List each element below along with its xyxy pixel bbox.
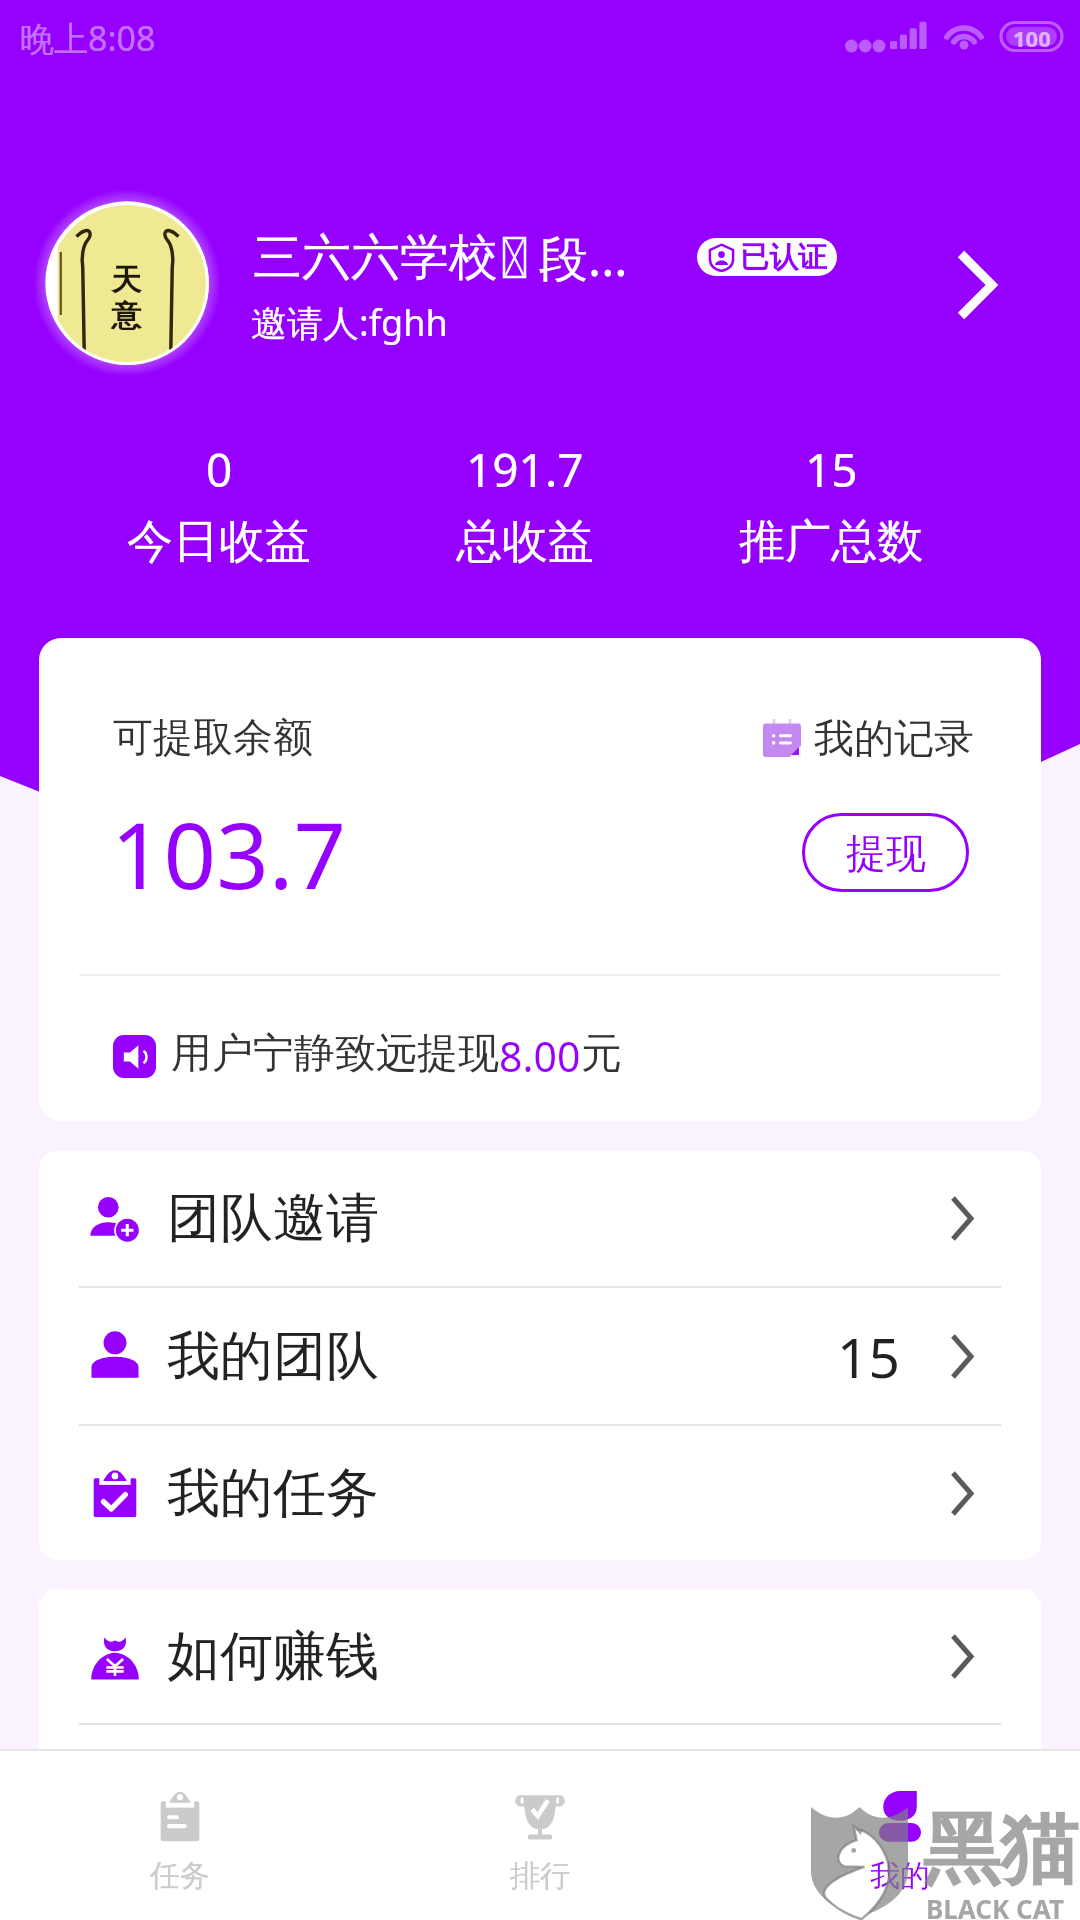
staticText: 100 <box>1013 23 1051 49</box>
staticText: 103.7 <box>111 791 347 916</box>
staticText: 191.7 <box>466 438 584 501</box>
staticText: 邀请人:fghh <box>251 298 448 347</box>
staticText: BLACK CAT <box>926 1891 1064 1920</box>
button[interactable]: 我的记录 <box>763 713 974 763</box>
button[interactable]: 我的团队 <box>39 1288 1041 1424</box>
staticText: 15 <box>837 1319 900 1394</box>
staticText: 总收益 <box>456 513 594 571</box>
button[interactable]: 我的 <box>720 1776 1080 1895</box>
staticText: 提现 <box>846 828 926 878</box>
button[interactable]: 团队邀请 <box>39 1151 1041 1286</box>
staticText: 黑猫 <box>922 1801 1078 1899</box>
staticText: 8.00 <box>499 1028 581 1084</box>
button[interactable]: Open profile <box>932 240 1022 330</box>
button[interactable]: 用户宁静致远提现 <box>113 1028 622 1084</box>
staticText: 团队邀请 <box>167 1185 379 1252</box>
staticText: 已认证 <box>740 239 827 276</box>
staticText: 用户宁静致远提现 <box>171 1028 499 1080</box>
staticText: 今日收益 <box>127 513 311 571</box>
staticText: 三六六学校 <box>253 227 498 289</box>
staticText: 段... <box>539 224 628 291</box>
staticText: 如何赚钱 <box>167 1623 379 1690</box>
staticText: 我的任务 <box>167 1460 379 1527</box>
staticText: 我的团队 <box>167 1323 379 1390</box>
staticText: 可提取余额 <box>113 712 313 762</box>
staticText: 0 <box>206 438 233 501</box>
staticText: 任务 <box>150 1857 210 1895</box>
button[interactable]: 任务 <box>0 1776 360 1895</box>
button[interactable]: 提现 <box>802 813 969 892</box>
button[interactable]: 排行 <box>360 1776 720 1895</box>
button[interactable]: 如何赚钱 <box>39 1589 1041 1723</box>
button[interactable]: Avatar <box>34 190 220 376</box>
staticText: 天 意 <box>111 261 141 335</box>
staticText: 推广总数 <box>739 513 923 571</box>
staticText: 元 <box>581 1028 622 1080</box>
button[interactable]: 我的任务 <box>39 1426 1041 1560</box>
staticText: 15 <box>805 438 858 501</box>
staticText: 我的记录 <box>814 713 974 763</box>
staticText: 我的 <box>870 1857 930 1895</box>
staticText: 排行 <box>510 1857 570 1895</box>
staticText: 晚上8:08 <box>20 15 156 61</box>
button[interactable]: 已认证 <box>697 238 837 276</box>
